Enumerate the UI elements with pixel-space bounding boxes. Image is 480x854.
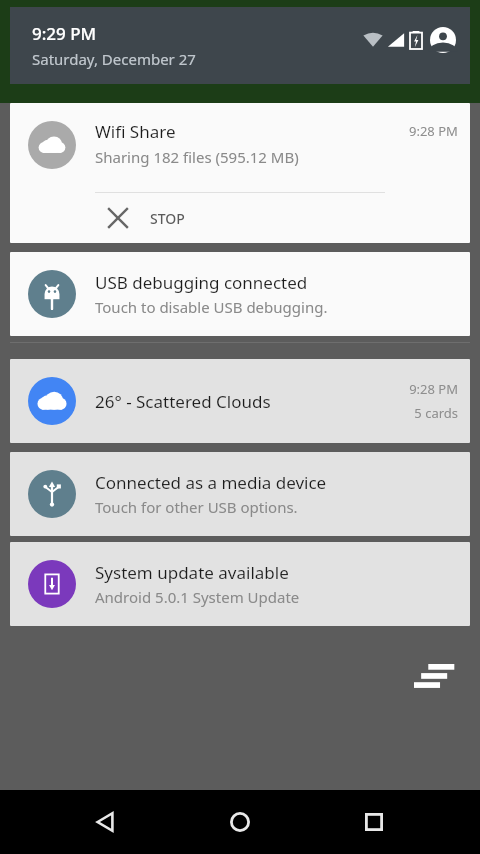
staticText: USB debugging connected xyxy=(95,271,308,294)
staticText: Touch for other USB options. xyxy=(95,497,298,517)
staticText: Android 5.0.1 System Update xyxy=(95,587,300,607)
button[interactable]: STOP xyxy=(10,193,470,243)
button[interactable]: Wifi Share xyxy=(10,103,470,243)
staticText: Touch to disable USB debugging. xyxy=(95,297,328,317)
button[interactable]: 26° - Scattered Clouds xyxy=(10,359,470,443)
button[interactable]: USB debugging connected xyxy=(10,252,470,336)
staticText: Saturday, December 27 xyxy=(32,49,196,69)
button[interactable]: Home xyxy=(212,794,268,850)
button[interactable]: Clear all notifications xyxy=(412,654,458,700)
button[interactable]: System update available xyxy=(10,542,470,626)
staticText: 9:29 PM xyxy=(32,22,97,45)
staticText: Wifi Share xyxy=(95,120,176,143)
staticText: 26° - Scattered Clouds xyxy=(95,390,271,413)
staticText: 9:28 PM xyxy=(409,380,458,398)
staticText: 9:28 PM xyxy=(409,122,458,140)
staticText: 5 cards xyxy=(414,404,458,422)
staticText: Connected as a media device xyxy=(95,471,327,494)
button[interactable]: Recent apps xyxy=(346,794,402,850)
button[interactable]: Connected as a media device xyxy=(10,452,470,536)
staticText: Sharing 182 files (595.12 MB) xyxy=(95,147,299,167)
button[interactable]: Back xyxy=(78,794,134,850)
staticText: System update available xyxy=(95,561,289,584)
staticText: STOP xyxy=(150,209,185,228)
